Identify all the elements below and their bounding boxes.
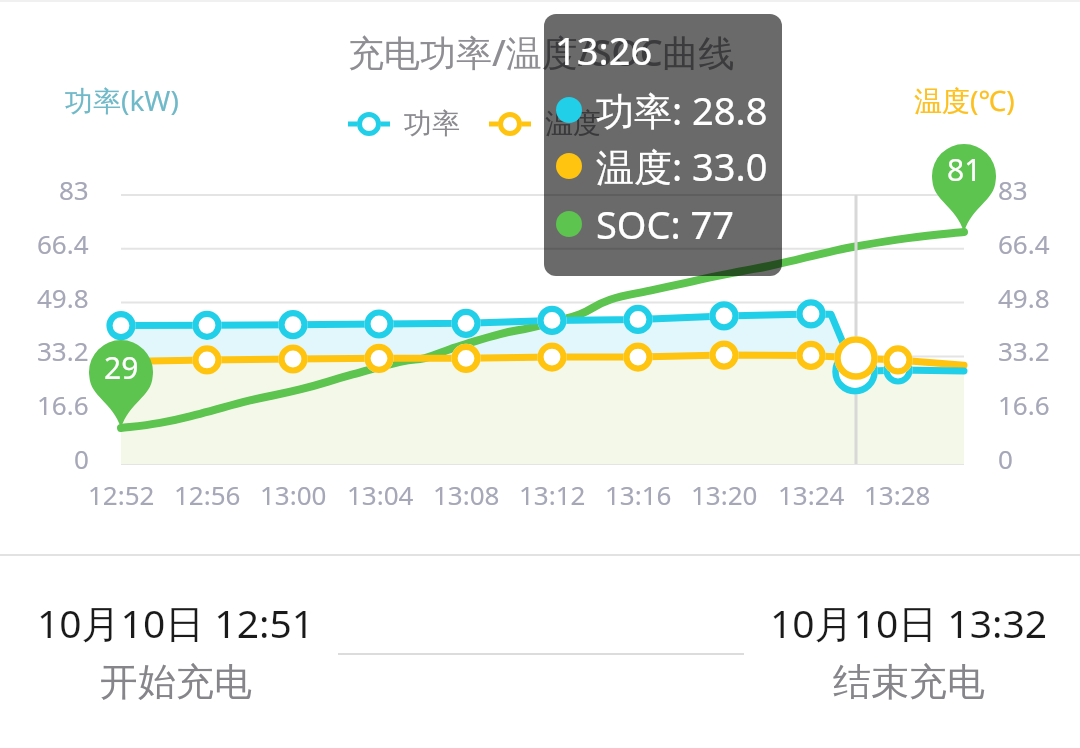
staticText: 33.2	[998, 333, 1050, 368]
staticText: 16.6	[998, 387, 1050, 422]
staticText: 结束充电	[833, 658, 985, 706]
staticText: 13:28	[864, 477, 931, 512]
staticText: 温度(℃)	[914, 81, 1015, 119]
staticText: 83	[59, 172, 89, 207]
staticText: 13:12	[519, 477, 586, 512]
staticText: 66.4	[998, 226, 1050, 261]
staticText: 0	[74, 441, 89, 476]
staticText: 功率: 28.8	[596, 84, 768, 136]
staticText: SOC: 77	[596, 198, 735, 250]
staticText: 12:52	[88, 477, 155, 512]
staticText: 13:04	[347, 477, 414, 512]
staticText: 温度: 33.0	[596, 140, 768, 192]
staticText: 13:20	[691, 477, 758, 512]
staticText: 83	[998, 172, 1028, 207]
staticText: 开始充电	[100, 658, 252, 706]
staticText: 49.8	[998, 280, 1050, 315]
staticText: 16.6	[37, 387, 89, 422]
button[interactable]: 功率	[348, 106, 460, 141]
staticText: 29	[104, 347, 139, 388]
staticText: 功率(kW)	[65, 81, 179, 119]
staticText: 66.4	[37, 226, 89, 261]
staticText: 13:00	[260, 477, 327, 512]
staticText: 13:26	[555, 24, 653, 76]
staticText: 12:56	[174, 477, 241, 512]
staticText: 0	[998, 441, 1013, 476]
staticText: 33.2	[37, 333, 89, 368]
staticText: 81	[947, 149, 982, 190]
staticText: 10月10日 12:51	[37, 596, 315, 649]
staticText: 13:08	[433, 477, 500, 512]
staticText: 49.8	[37, 280, 89, 315]
staticText: 13:16	[605, 477, 672, 512]
staticText: 充电功率/温度/SOC曲线	[348, 28, 735, 77]
staticText: 功率	[404, 106, 460, 141]
staticText: 13:24	[778, 477, 845, 512]
button[interactable]: 温度	[489, 106, 601, 141]
staticText: 10月10日 13:32	[770, 596, 1048, 649]
staticText: 温度	[545, 106, 601, 141]
